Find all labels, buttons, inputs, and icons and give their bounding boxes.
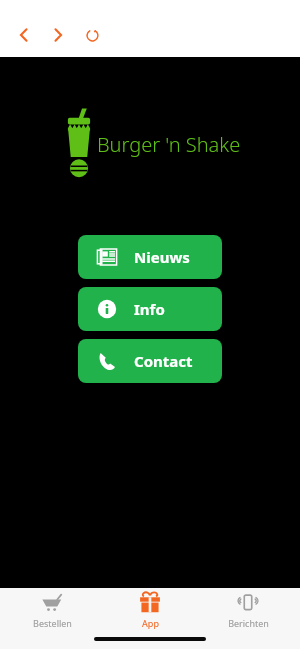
button[interactable]: Berichten: [202, 592, 294, 629]
staticText: Berichten: [228, 617, 269, 629]
staticText: Info: [134, 299, 165, 319]
button[interactable]: Forward: [44, 21, 72, 49]
button[interactable]: Bestellen: [6, 592, 98, 629]
other: Burger 'n Shake logo: [64, 107, 94, 177]
staticText: Contact: [134, 351, 193, 371]
staticText: Bestellen: [33, 617, 72, 629]
button[interactable]: Nieuws: [78, 235, 222, 279]
button[interactable]: Contact: [78, 339, 222, 383]
button[interactable]: App: [104, 592, 196, 629]
button[interactable]: Back: [10, 21, 38, 49]
button[interactable]: Reload: [78, 21, 106, 49]
staticText: Nieuws: [134, 247, 190, 267]
staticText: Burger 'n Shake: [97, 131, 241, 158]
staticText: App: [142, 617, 159, 629]
button[interactable]: Info: [78, 287, 222, 331]
